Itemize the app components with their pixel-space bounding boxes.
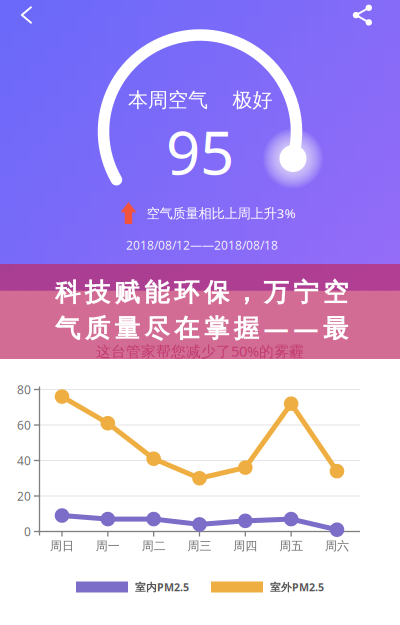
staticText: 周日: [50, 539, 74, 553]
staticText: 室内PM2.5: [135, 580, 189, 594]
staticText: 80: [17, 381, 31, 397]
staticText: 2018/08/12——2018/08/18: [126, 237, 278, 253]
staticText: 周六: [325, 539, 349, 553]
staticText: 气质量尽在掌握——最: [55, 311, 348, 344]
staticText: 60: [17, 417, 31, 433]
staticText: 极好: [232, 88, 272, 112]
staticText: 这台管家帮您减少了50%的雾霾: [96, 341, 304, 361]
staticText: 周五: [279, 539, 303, 553]
staticText: 科技赋能环保，万宁空: [55, 277, 348, 308]
staticText: 40: [17, 452, 31, 468]
button[interactable]: Share: [340, 0, 384, 36]
staticText: 20: [17, 488, 31, 504]
button[interactable]: Back: [4, 0, 48, 36]
staticText: 空气质量相比上周上升3%: [146, 204, 295, 222]
staticText: 周四: [233, 539, 257, 553]
staticText: 周二: [142, 539, 166, 553]
staticText: 95: [166, 112, 234, 191]
staticText: 周一: [96, 539, 120, 553]
staticText: 室外PM2.5: [270, 580, 324, 594]
staticText: 周三: [187, 539, 211, 553]
staticText: 0: [24, 523, 31, 539]
staticText: 本周空气: [128, 88, 208, 112]
